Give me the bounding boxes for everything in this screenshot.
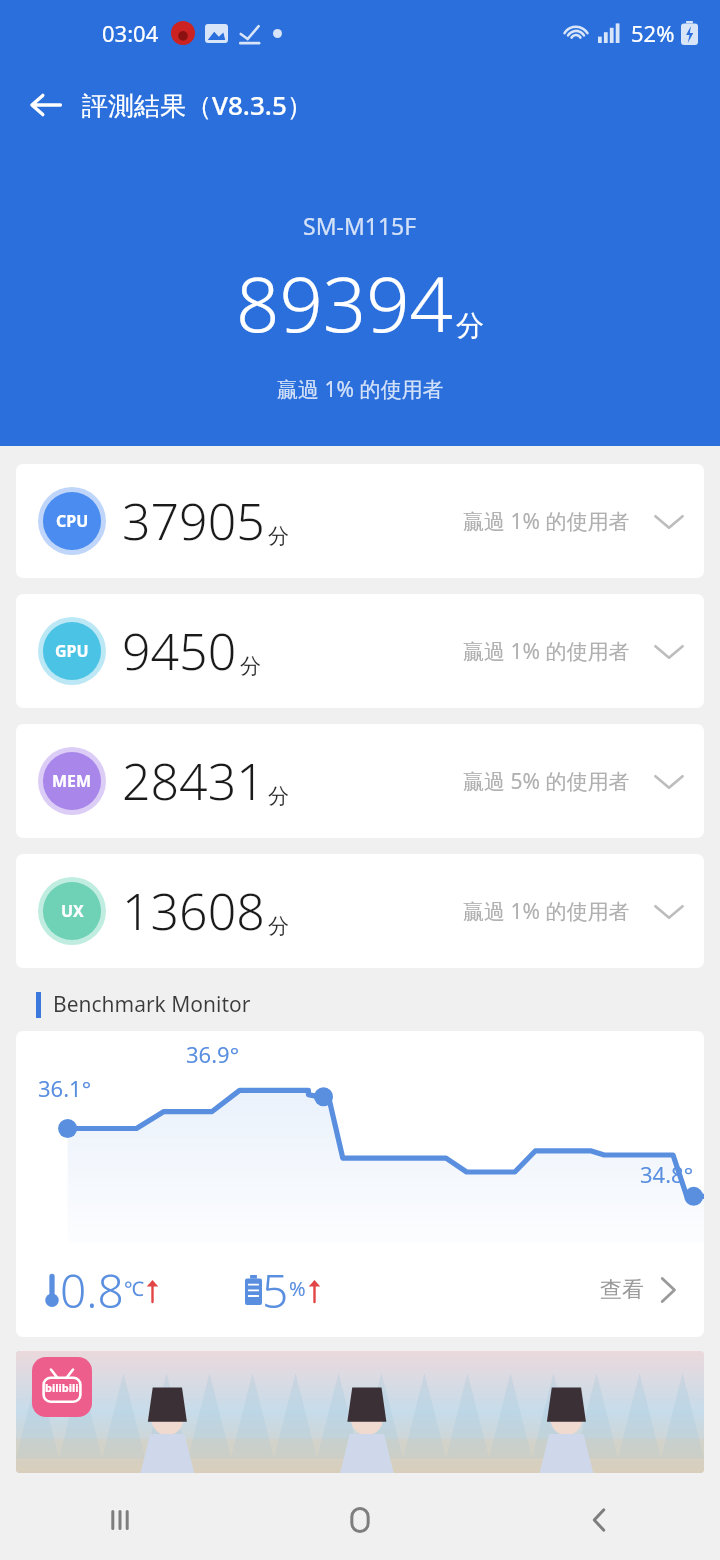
button[interactable]: GPU [16,594,704,708]
button[interactable]: bilibili [16,1351,704,1473]
staticText: 贏過 1% 的使用者 [463,507,630,536]
staticText: bilibili [45,1380,79,1395]
button[interactable]: MEM [16,724,704,838]
staticText: MEM [52,770,92,792]
staticText: 分 [268,913,289,939]
staticText: 評測結果（V8.3.5） [82,87,313,123]
staticText: 36.1° [38,1073,92,1103]
staticText: 13608 [122,877,265,945]
button[interactable]: Recents [0,1480,240,1560]
staticText: 分 [240,653,261,679]
staticText: 贏過 1% 的使用者 [463,637,630,666]
staticText: ℃ [124,1275,144,1302]
staticText: 0.8 [60,1259,124,1322]
staticText: 9450 [122,617,237,685]
button[interactable]: 查看 [592,1264,694,1316]
staticText: 34.8° [640,1159,694,1189]
staticText: CPU [56,510,89,532]
staticText: 贏過 5% 的使用者 [463,767,630,796]
staticText: % [289,1275,306,1302]
staticText: 分 [268,523,289,549]
staticText: 分 [268,783,289,809]
staticText: 28431 [122,747,265,815]
button[interactable]: Home [240,1480,480,1560]
staticText: GPU [55,640,89,662]
staticText: 贏過 1% 的使用者 [277,375,444,404]
staticText: 89394 [236,251,453,355]
staticText: SM-M115F [303,210,417,241]
button[interactable]: Back [16,75,76,135]
staticText: 52% [631,18,675,48]
button[interactable]: CPU [16,464,704,578]
staticText: 贏過 1% 的使用者 [463,897,630,926]
button[interactable]: UX [16,854,704,968]
staticText: 03:04 [102,18,159,48]
staticText: 分 [456,308,484,343]
staticText: 查看 [600,1276,644,1304]
button[interactable]: Back [480,1480,720,1560]
staticText: Benchmark Monitor [53,990,251,1019]
staticText: 37905 [122,487,265,555]
staticText: 36.9° [186,1039,240,1069]
staticText: 5 [262,1259,289,1322]
staticText: UX [61,900,84,922]
